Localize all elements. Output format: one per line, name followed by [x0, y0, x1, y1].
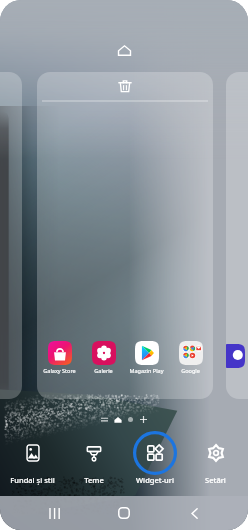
- staticText: Widget-uri: [136, 475, 174, 485]
- staticText: Fundal și stil: [10, 475, 55, 485]
- button[interactable]: Back: [178, 497, 210, 529]
- button[interactable]: Setări: [187, 431, 244, 485]
- button[interactable]: Apps list: [98, 413, 111, 426]
- button[interactable]: Fundal și stil: [4, 431, 61, 485]
- button[interactable]: Recents: [38, 497, 70, 529]
- button[interactable]: Widget-uri: [126, 431, 183, 485]
- button[interactable]: Previous page: [0, 72, 22, 399]
- staticText: Teme: [84, 475, 104, 485]
- button[interactable]: Home screen: [109, 35, 139, 65]
- button[interactable]: Next page: [226, 72, 248, 399]
- button[interactable]: Magazin Play: [125, 341, 168, 374]
- staticText: Galerie: [94, 367, 113, 374]
- button[interactable]: Galaxy Store: [38, 341, 81, 374]
- button[interactable]: Teme: [65, 431, 122, 485]
- button[interactable]: Galerie: [82, 341, 125, 374]
- staticText: Galaxy Store: [43, 367, 76, 374]
- button[interactable]: Remove page: [112, 73, 138, 99]
- staticText: Google: [181, 367, 200, 374]
- staticText: Magazin Play: [129, 367, 164, 374]
- staticText: Setări: [205, 475, 226, 485]
- button[interactable]: Google: [169, 341, 212, 374]
- button[interactable]: Add page: [137, 413, 150, 426]
- button[interactable]: Home: [108, 497, 140, 529]
